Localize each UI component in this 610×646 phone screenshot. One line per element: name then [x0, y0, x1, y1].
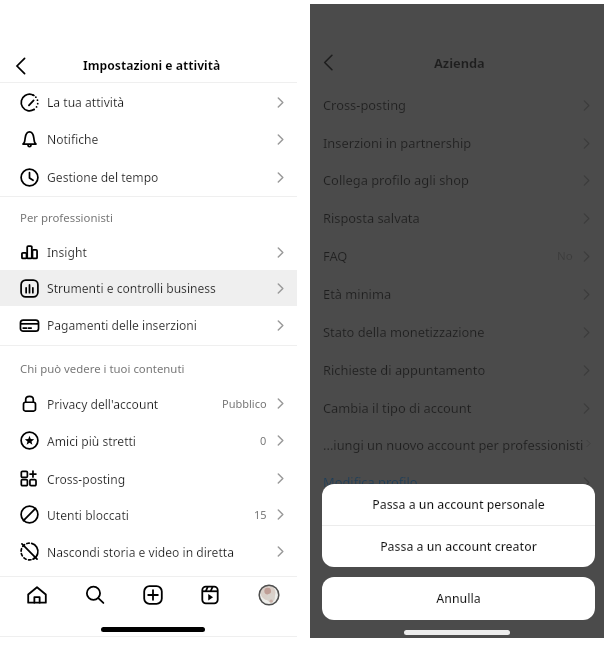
- staticText: Passa a un account personale: [372, 496, 545, 513]
- button[interactable]: Annulla: [322, 577, 595, 620]
- staticText: ...iungi un nuovo account per profession…: [323, 436, 584, 454]
- button[interactable]: Risposta salvata: [310, 199, 604, 237]
- button[interactable]: Cambia il tipo di account: [310, 389, 604, 427]
- staticText: 0: [260, 433, 267, 448]
- staticText: FAQ: [323, 247, 348, 265]
- button[interactable]: Notifiche: [0, 120, 297, 158]
- button[interactable]: Amici più stretti: [0, 422, 297, 459]
- button[interactable]: Inserzioni in partnership: [310, 124, 604, 162]
- button[interactable]: Passa a un account creator: [322, 526, 595, 567]
- button[interactable]: Insight: [0, 234, 297, 270]
- staticText: Annulla: [436, 590, 481, 607]
- staticText: Richieste di appuntamento: [323, 361, 486, 379]
- button[interactable]: Cross-posting: [310, 86, 604, 124]
- button[interactable]: Stato della monetizzazione: [310, 313, 604, 351]
- staticText: Risposta salvata: [323, 209, 420, 227]
- button[interactable]: Modifica profilo: [310, 463, 604, 501]
- staticText: Insight: [47, 244, 87, 260]
- staticText: Gestione del tempo: [47, 169, 159, 185]
- button[interactable]: Collega profilo agli shop: [310, 161, 604, 199]
- button[interactable]: Pagamenti delle inserzioni: [0, 307, 297, 343]
- staticText: Modifica profilo: [323, 473, 418, 491]
- staticText: Inserzioni in partnership: [323, 134, 472, 152]
- button[interactable]: Create: [133, 575, 173, 615]
- button[interactable]: Nascondi storia e video in diretta: [0, 533, 297, 570]
- staticText: Cross-posting: [47, 471, 126, 487]
- staticText: Nascondi storia e video in diretta: [47, 544, 234, 560]
- staticText: Strumenti e controlli business: [47, 280, 216, 296]
- button[interactable]: Privacy dell'account: [0, 385, 297, 422]
- button[interactable]: Home: [17, 575, 57, 615]
- staticText: Amici più stretti: [47, 433, 136, 449]
- staticText: Pubblico: [222, 396, 267, 411]
- button[interactable]: ...iungi un nuovo account per profession…: [310, 426, 604, 464]
- button[interactable]: Utenti bloccati: [0, 496, 297, 533]
- button[interactable]: Profile: [249, 575, 289, 615]
- staticText: Cross-posting: [323, 96, 406, 114]
- button[interactable]: Richieste di appuntamento: [310, 351, 604, 389]
- staticText: Chi può vedere i tuoi contenuti: [20, 361, 185, 377]
- staticText: Collega profilo agli shop: [323, 171, 469, 189]
- staticText: 15: [254, 507, 267, 522]
- button[interactable]: Back: [315, 49, 341, 75]
- staticText: No: [557, 248, 573, 264]
- button[interactable]: Back: [8, 53, 34, 79]
- staticText: Impostazioni e attività: [83, 57, 221, 74]
- button[interactable]: La tua attività: [0, 83, 297, 121]
- staticText: Utenti bloccati: [47, 507, 129, 523]
- staticText: Cambia il tipo di account: [323, 399, 472, 417]
- button[interactable]: Search: [75, 575, 115, 615]
- staticText: Azienda: [434, 54, 485, 71]
- staticText: Passa a un account creator: [380, 538, 537, 555]
- button[interactable]: Strumenti e controlli business: [0, 270, 297, 306]
- staticText: Stato della monetizzazione: [323, 323, 485, 341]
- staticText: La tua attività: [47, 94, 125, 110]
- button[interactable]: Gestione del tempo: [0, 158, 297, 196]
- staticText: Privacy dell'account: [47, 396, 159, 412]
- button[interactable]: Età minima: [310, 275, 604, 313]
- staticText: Pagamenti delle inserzioni: [47, 317, 197, 333]
- staticText: Età minima: [323, 285, 392, 303]
- staticText: Per professionisti: [20, 210, 113, 226]
- staticText: Notifiche: [47, 131, 99, 147]
- button[interactable]: Reels: [190, 575, 230, 615]
- button[interactable]: Passa a un account personale: [322, 484, 595, 525]
- button[interactable]: Cross-posting: [0, 460, 297, 497]
